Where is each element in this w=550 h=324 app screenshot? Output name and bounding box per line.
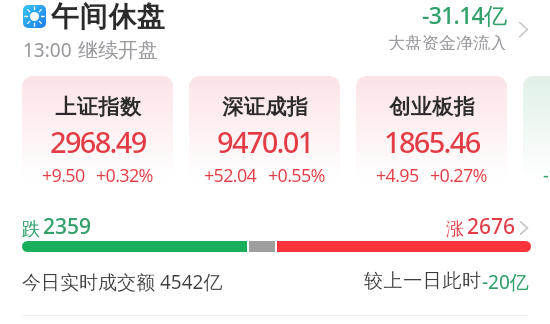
staticText: 大盘资金净流入 xyxy=(388,33,507,50)
staticText: 今日实时成交额 4542亿 xyxy=(22,269,223,295)
staticText: +4.95 xyxy=(376,163,419,188)
staticText: 2676 xyxy=(467,212,516,241)
button[interactable]: 创业板指 xyxy=(356,76,507,196)
staticText: +9.50 xyxy=(42,163,85,188)
staticText: -12.14 xyxy=(543,163,550,188)
staticText: +52.04 xyxy=(204,163,257,188)
button[interactable]: 恒生指数 xyxy=(523,76,550,196)
staticText: -20亿 xyxy=(482,269,529,295)
staticText: +0.55% xyxy=(268,163,325,188)
staticText: 午间休盘 xyxy=(51,0,166,34)
button[interactable]: 深证成指 xyxy=(189,76,340,196)
staticText: 跌 xyxy=(22,218,40,241)
staticText: 2968.49 xyxy=(50,122,146,161)
staticText: 上证指数 xyxy=(55,94,141,120)
staticText: 创业板指 xyxy=(389,94,475,120)
button[interactable]: 大盘资金净流入 xyxy=(385,0,535,50)
button[interactable]: 上证指数 xyxy=(22,76,173,196)
staticText: 9470.01 xyxy=(217,122,313,161)
staticText: +0.27% xyxy=(430,163,487,188)
staticText: 1865.46 xyxy=(384,122,480,161)
staticText: 2359 xyxy=(43,212,92,241)
staticText: +0.32% xyxy=(96,163,153,188)
staticText: 较上一日此时 xyxy=(364,269,482,293)
staticText: 继续开盘 xyxy=(78,38,158,63)
staticText: 13:00 xyxy=(23,37,72,63)
staticText: 深证成指 xyxy=(222,94,308,120)
staticText: 涨 xyxy=(446,218,464,241)
staticText: -31.14亿 xyxy=(422,0,507,30)
